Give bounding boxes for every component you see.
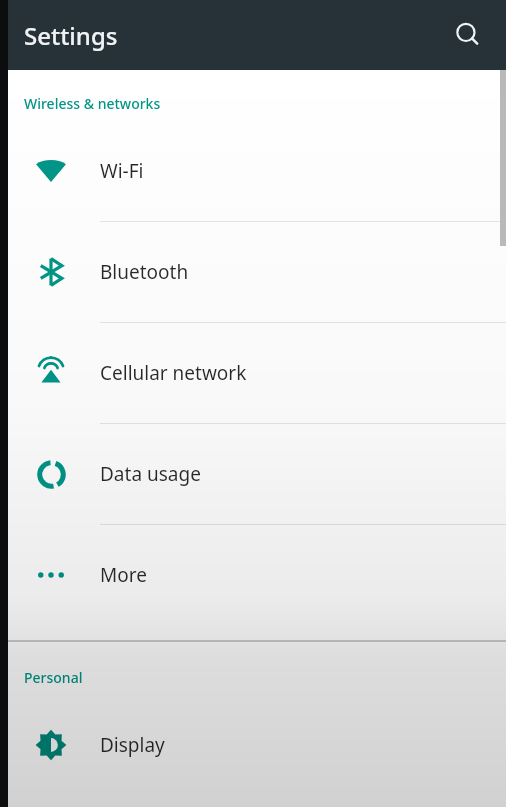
- staticText: Personal: [24, 668, 83, 687]
- staticText: Data usage: [100, 461, 201, 487]
- button[interactable]: Bluetooth: [0, 222, 506, 323]
- staticText: Cellular network: [100, 360, 247, 386]
- button[interactable]: Cellular network: [0, 323, 506, 424]
- button[interactable]: Data usage: [0, 424, 506, 525]
- staticText: Wi-Fi: [100, 158, 144, 184]
- button[interactable]: More: [0, 525, 506, 625]
- button[interactable]: Search: [444, 11, 492, 59]
- button[interactable]: Wi-Fi: [0, 121, 506, 222]
- staticText: More: [100, 562, 147, 588]
- staticText: Settings: [24, 19, 118, 52]
- staticText: Wireless & networks: [24, 94, 161, 113]
- staticText: Bluetooth: [100, 259, 189, 285]
- staticText: Display: [100, 732, 165, 758]
- button[interactable]: Display: [0, 695, 506, 795]
